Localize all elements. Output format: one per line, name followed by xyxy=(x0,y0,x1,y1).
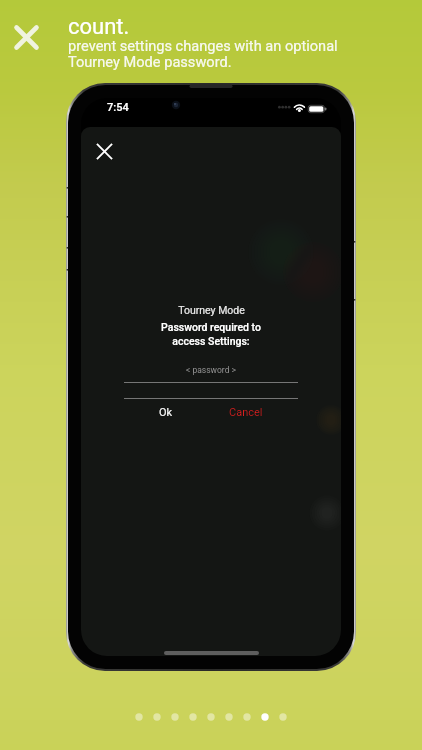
staticText: Tourney Mode xyxy=(178,304,245,316)
staticText: Cancel xyxy=(229,406,263,419)
button[interactable]: Close xyxy=(89,136,120,167)
staticText: Password required to access Settings: xyxy=(161,321,261,348)
staticText: 7:54 xyxy=(107,101,129,114)
staticText: prevent settings changes with an optiona… xyxy=(68,37,338,70)
staticText: < password > xyxy=(186,365,236,375)
button[interactable]: Cancel xyxy=(218,403,274,421)
staticText: Ok xyxy=(159,406,173,419)
button[interactable]: Ok xyxy=(147,403,185,421)
button[interactable]: Close xyxy=(6,17,47,58)
staticText: count. xyxy=(68,14,130,40)
